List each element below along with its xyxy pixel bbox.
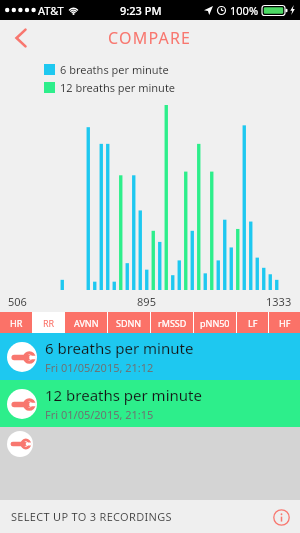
button[interactable]: 12 breaths per minute [0,380,300,427]
staticText: COMPARE [108,27,192,49]
button[interactable]: HF [269,312,300,333]
button[interactable]: pNN50 [194,312,236,333]
staticText: Fri 01/05/2015, 21:15 [45,407,154,422]
button[interactable]: 6 breaths per minute [0,333,300,380]
staticText: 9:23 PM [120,3,162,18]
staticText: 12 breaths per minute [45,385,202,405]
staticText: 1333 [266,294,292,309]
staticText: HR [10,317,23,329]
button[interactable]: rMSSD [151,312,193,333]
staticText: SDNN [116,317,142,329]
button[interactable] [0,427,300,460]
button[interactable]: SDNN [108,312,150,333]
staticText: 12 breaths per minute [60,80,176,95]
button[interactable]: LF [237,312,268,333]
staticText: HF [279,317,291,329]
button[interactable]: Back [0,20,42,56]
staticText: 506 [8,294,27,309]
button[interactable]: HR [0,312,32,333]
staticText: 100% [230,3,259,18]
staticText: pNN50 [200,317,230,329]
staticText: Fri 01/05/2015, 21:12 [45,360,154,375]
button[interactable]: AVNN [65,312,107,333]
button[interactable]: Info [266,502,296,532]
staticText: 895 [27,294,266,309]
staticText: AVNN [74,317,99,329]
staticText: AT&T [38,3,64,18]
staticText: LF [248,317,258,329]
staticText: RR [43,317,55,329]
staticText: 6 breaths per minute [60,62,169,77]
staticText: SELECT UP TO 3 RECORDINGS [11,509,172,524]
staticText: 6 breaths per minute [45,338,194,358]
staticText: rMSSD [158,317,187,329]
button[interactable]: RR [33,312,64,333]
